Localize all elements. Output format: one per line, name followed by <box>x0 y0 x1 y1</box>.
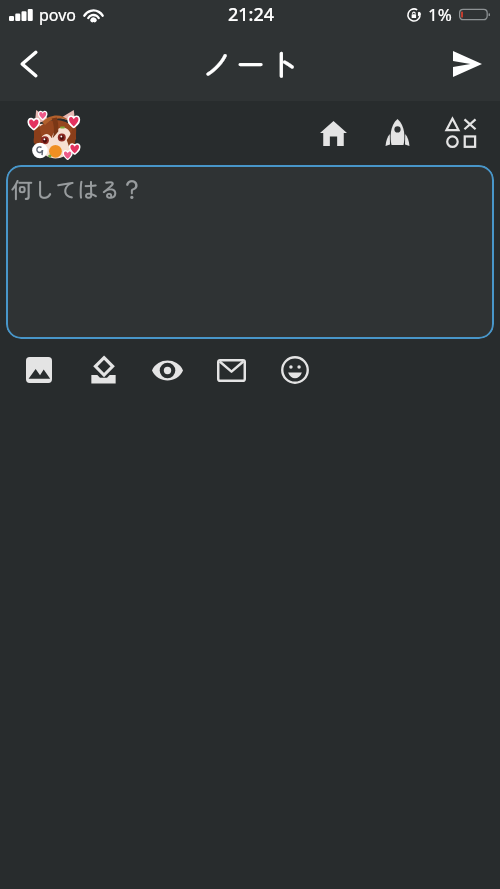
button[interactable]: Home <box>309 109 357 157</box>
button[interactable]: Create poll <box>77 344 129 386</box>
button[interactable]: Visibility <box>141 344 193 386</box>
staticText: 1% <box>428 3 452 26</box>
staticText: 21:24 <box>228 2 275 27</box>
button[interactable]: Send <box>440 38 495 89</box>
button[interactable]: Back <box>1 38 56 89</box>
button[interactable]: Account <box>31 110 78 157</box>
staticText: 何してはる？ <box>11 172 144 204</box>
staticText: povo <box>39 4 77 26</box>
button[interactable]: Games <box>437 109 485 157</box>
button[interactable]: Direct message <box>205 344 257 386</box>
button[interactable]: Add image <box>13 344 65 386</box>
button[interactable]: 何してはる？ <box>6 165 494 339</box>
button[interactable]: Explore <box>373 109 421 157</box>
button[interactable]: Emoji <box>269 344 321 386</box>
staticText: ノート <box>201 39 300 87</box>
